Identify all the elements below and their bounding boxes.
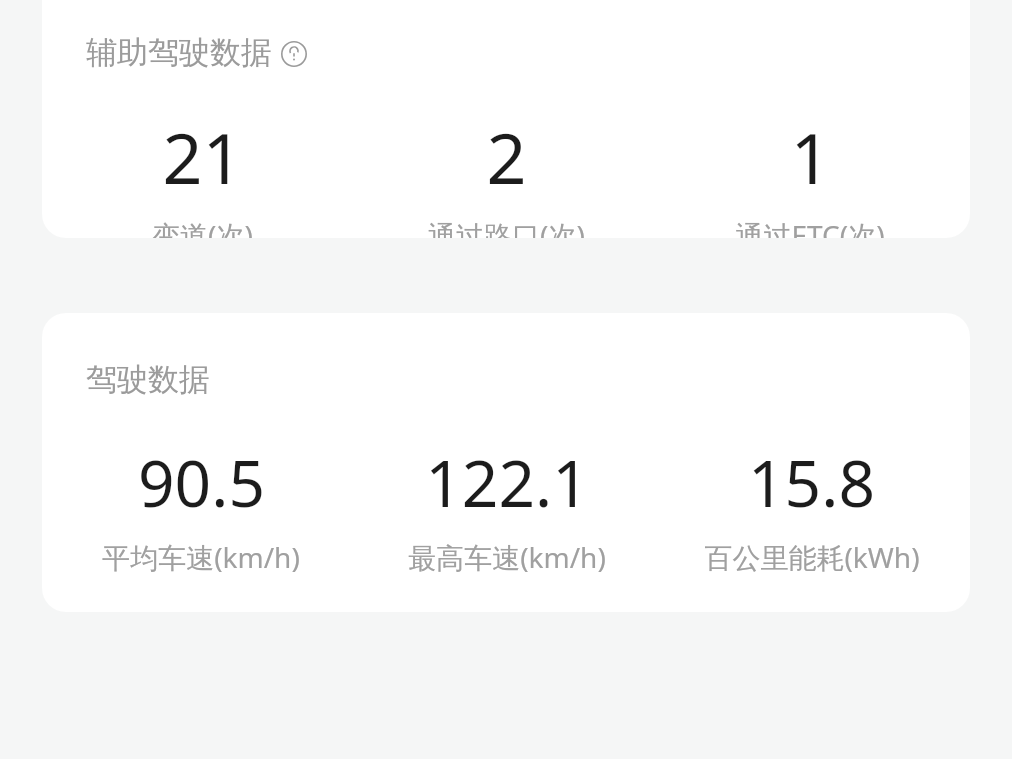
button[interactable]: 辅助驾驶数据: [86, 33, 926, 72]
staticText: 变道(次): [152, 216, 253, 238]
staticText: 百公里能耗(kWh): [704, 538, 920, 576]
staticText: 90.5: [138, 439, 265, 526]
button[interactable]: 15.8: [659, 439, 964, 576]
button[interactable]: 90.5: [48, 439, 354, 576]
staticText: 1: [790, 109, 831, 204]
staticText: 平均车速(km/h): [102, 538, 300, 576]
staticText: 2: [486, 109, 527, 204]
staticText: 通过路口(次): [428, 216, 585, 238]
staticText: 最高车速(km/h): [408, 538, 606, 576]
staticText: 15.8: [748, 439, 875, 526]
button[interactable]: 122.1: [354, 439, 659, 576]
staticText: 辅助驾驶数据: [86, 33, 272, 72]
staticText: 122.1: [425, 439, 589, 526]
button[interactable]: 1: [658, 109, 962, 238]
button[interactable]: 21: [50, 109, 354, 238]
staticText: 通过ETC(次): [735, 216, 885, 238]
button[interactable]: 驾驶数据: [86, 360, 926, 399]
button[interactable]: 2: [354, 109, 658, 238]
staticText: 驾驶数据: [86, 360, 210, 399]
staticText: 21: [162, 109, 243, 204]
button[interactable]: 帮助说明: [281, 41, 307, 67]
